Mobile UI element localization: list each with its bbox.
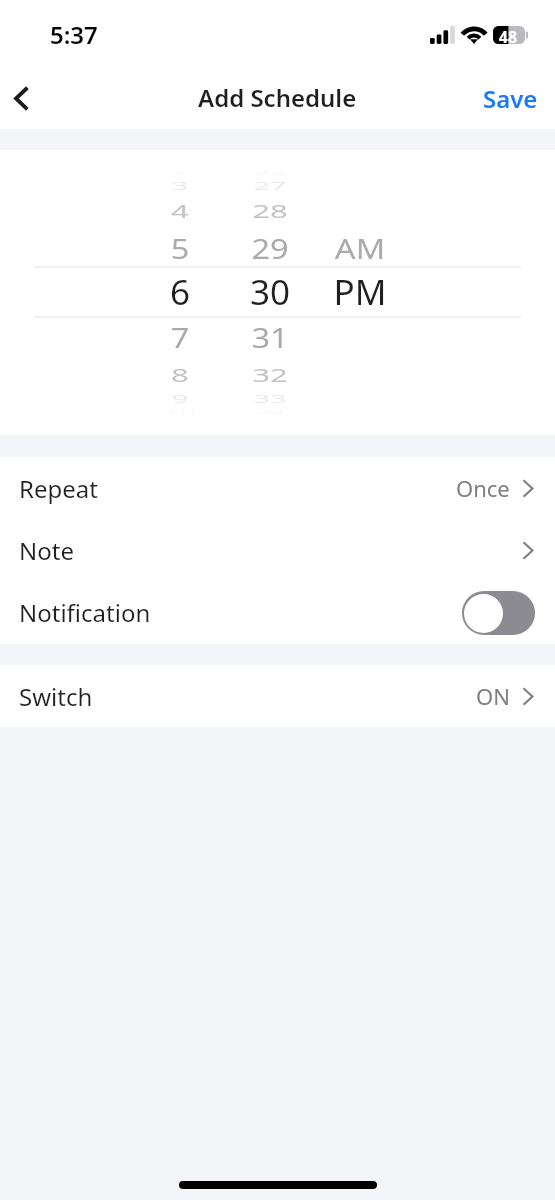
button[interactable]: Notification bbox=[0, 581, 555, 644]
staticText: 33 bbox=[211, 392, 329, 408]
button[interactable]: Save bbox=[475, 74, 546, 123]
staticText: 8 bbox=[118, 362, 242, 389]
staticText: Add Schedule bbox=[198, 81, 357, 114]
staticText: 5 bbox=[115, 230, 245, 270]
staticText: AM bbox=[295, 230, 425, 270]
staticText: 9 bbox=[121, 392, 239, 408]
staticText: Repeat bbox=[19, 472, 98, 505]
staticText: 28 bbox=[208, 198, 332, 225]
button[interactable]: Notification toggle bbox=[462, 591, 535, 635]
button[interactable]: Note bbox=[0, 519, 555, 581]
staticText: 27 bbox=[211, 179, 329, 195]
staticText: 48 bbox=[492, 26, 524, 44]
button[interactable]: Back bbox=[0, 76, 48, 124]
staticText: Note bbox=[19, 534, 74, 567]
staticText: 5:37 bbox=[50, 18, 98, 51]
button[interactable]: Switch bbox=[0, 665, 555, 727]
staticText: Once bbox=[456, 473, 510, 503]
staticText: 32 bbox=[208, 362, 332, 389]
staticText: 7 bbox=[115, 319, 245, 359]
button[interactable]: Repeat bbox=[0, 457, 555, 519]
staticText: 4 bbox=[118, 198, 242, 225]
staticText: Switch bbox=[19, 680, 93, 713]
staticText: 31 bbox=[205, 319, 335, 359]
staticText: 29 bbox=[205, 230, 335, 270]
staticText: 6 bbox=[110, 268, 250, 320]
staticText: Save bbox=[483, 82, 538, 115]
staticText: ON bbox=[476, 681, 510, 711]
staticText: 30 bbox=[200, 268, 340, 320]
staticText: PM bbox=[290, 268, 430, 320]
staticText: Notification bbox=[19, 596, 151, 629]
